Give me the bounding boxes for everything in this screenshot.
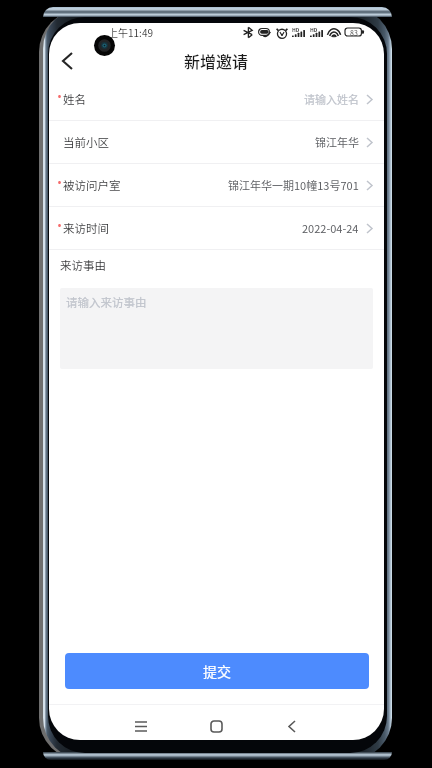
staticText: 当前小区 [63,134,109,151]
button[interactable]: 主屏幕 [178,705,254,740]
staticText: 上午11:49 [108,25,153,39]
staticText: 被访问户室 [63,177,121,194]
staticText: 提交 [203,661,231,681]
button[interactable]: 来访时间 [49,207,384,249]
button[interactable]: 姓名 [49,78,384,120]
button[interactable]: 当前小区 [49,121,384,163]
staticText: 来访事由 [60,257,106,274]
button[interactable]: 提交 [65,653,369,689]
staticText: HD [292,26,300,33]
staticText: 来访时间 [63,220,109,237]
staticText: 姓名 [63,91,86,108]
staticText: 新增邀请 [184,49,249,72]
staticText: 2022-04-24 [302,220,359,236]
button[interactable]: 请输入来访事由 [60,288,373,369]
staticText: 锦江年华一期10幢13号701 [228,177,359,193]
staticText: 请输入姓名 [304,91,359,107]
button[interactable]: 返回 [49,45,87,76]
staticText: HD [310,26,318,33]
staticText: 83 [350,28,358,36]
button[interactable]: 被访问户室 [49,164,384,206]
staticText: 锦江年华 [315,134,359,150]
staticText: 请输入来访事由 [66,294,147,311]
button[interactable]: 返回 [254,705,330,740]
button[interactable]: 最近任务 [103,705,178,740]
